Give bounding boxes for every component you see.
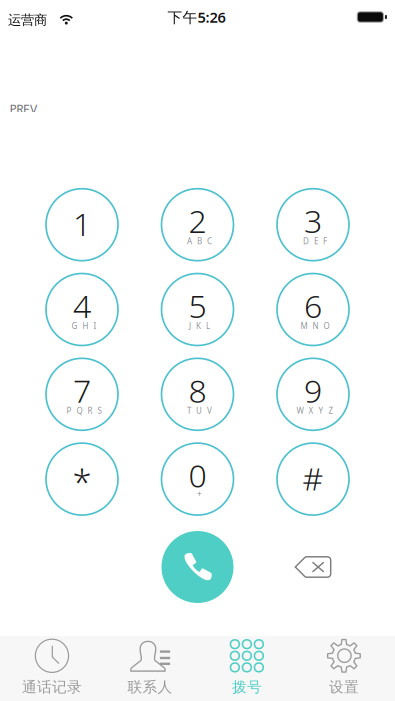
button[interactable]: #: [277, 443, 349, 515]
button[interactable]: 拨号: [197, 636, 296, 701]
button[interactable]: 7: [46, 358, 118, 430]
staticText: 通话记录: [22, 678, 82, 696]
staticText: 4: [73, 284, 91, 327]
staticText: 0: [188, 454, 206, 496]
button[interactable]: *: [46, 443, 118, 515]
staticText: 9: [304, 369, 322, 412]
staticText: MNO: [300, 321, 329, 331]
staticText: GHI: [71, 321, 96, 331]
staticText: 6: [304, 284, 322, 327]
button[interactable]: 设置: [296, 636, 395, 701]
staticText: WXYZ: [296, 405, 333, 416]
staticText: 5: [188, 284, 206, 327]
button[interactable]: 9: [277, 358, 349, 430]
button[interactable]: 通话记录: [0, 636, 99, 701]
button[interactable]: 0: [161, 443, 233, 515]
staticText: 7: [73, 369, 91, 412]
button[interactable]: 2: [161, 189, 233, 261]
staticText: 8: [188, 369, 206, 412]
staticText: ABC: [187, 236, 212, 246]
button[interactable]: 1: [46, 189, 118, 261]
button[interactable]: 3: [277, 189, 349, 261]
staticText: 联系人: [127, 678, 172, 696]
button[interactable]: 5: [161, 273, 233, 345]
staticText: 下午5:26: [167, 7, 225, 27]
button[interactable]: 8: [161, 358, 233, 430]
staticText: 1: [73, 202, 91, 245]
staticText: 设置: [329, 678, 359, 696]
button[interactable]: 4: [46, 273, 118, 345]
button[interactable]: Call: [161, 531, 233, 603]
staticText: 运营商: [8, 12, 47, 28]
staticText: TUV: [187, 405, 212, 416]
staticText: +: [197, 489, 202, 499]
staticText: 拨号: [232, 678, 262, 696]
staticText: *: [72, 459, 91, 505]
staticText: 2: [188, 199, 206, 242]
button[interactable]: Delete: [277, 531, 349, 603]
staticText: DEF: [303, 236, 327, 246]
button[interactable]: 6: [277, 273, 349, 345]
staticText: 3: [304, 199, 322, 242]
button[interactable]: 联系人: [99, 636, 198, 701]
staticText: JKL: [189, 321, 210, 331]
staticText: #: [302, 457, 323, 499]
staticText: PQRS: [66, 405, 101, 416]
staticText: PREV: [9, 101, 37, 117]
